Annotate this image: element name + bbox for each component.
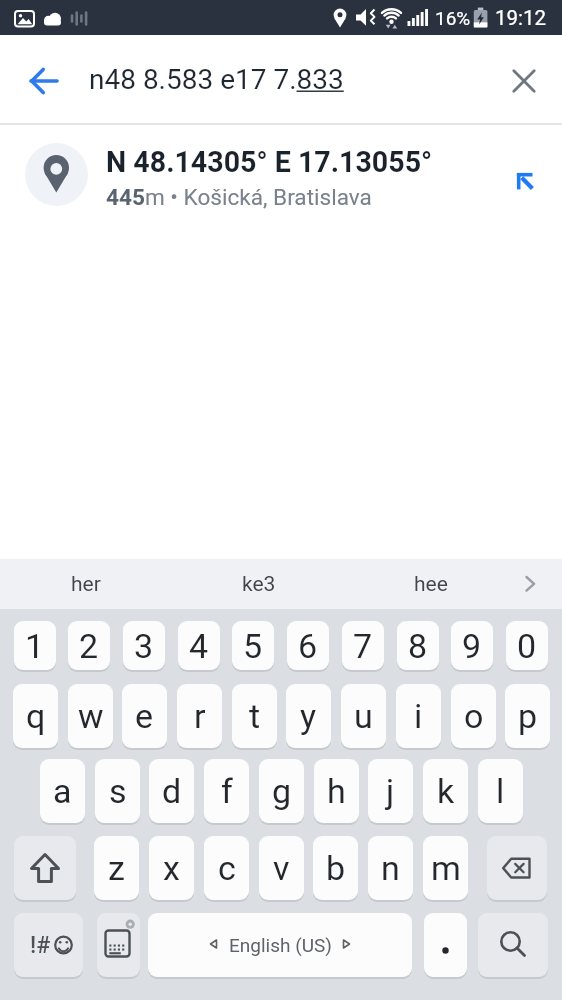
staticText: q [26, 696, 46, 736]
button[interactable] [14, 836, 76, 900]
button[interactable]: h [314, 759, 359, 823]
staticText: r [194, 696, 206, 736]
staticText: 3 [134, 626, 154, 666]
staticText: g [272, 771, 292, 811]
button[interactable]: s [95, 759, 140, 823]
staticText: 4 [189, 626, 209, 666]
button[interactable]: j [368, 759, 413, 823]
button[interactable] [487, 836, 547, 900]
staticText: j [386, 771, 395, 811]
button[interactable] [148, 913, 412, 977]
button[interactable] [510, 559, 555, 609]
button[interactable]: 2 [68, 621, 110, 670]
button[interactable] [14, 913, 83, 977]
staticText: 2 [79, 626, 99, 666]
button[interactable]: x [149, 836, 194, 900]
staticText: !# [30, 932, 51, 959]
staticText: n [381, 848, 400, 888]
staticText: ke3 [242, 572, 276, 597]
button[interactable]: b [313, 836, 358, 900]
staticText: s [109, 771, 127, 811]
staticText: y [300, 696, 317, 736]
staticText: 0 [517, 626, 537, 666]
staticText: z [108, 848, 125, 888]
button[interactable]: hee [391, 559, 471, 609]
button[interactable]: 9 [451, 621, 493, 670]
staticText: w [78, 696, 104, 736]
button[interactable]: z [94, 836, 139, 900]
button[interactable]: 4 [178, 621, 220, 670]
staticText: c [218, 848, 236, 888]
staticText: 1 [25, 626, 45, 666]
button[interactable]: 5 [232, 621, 274, 670]
staticText: h [327, 771, 346, 811]
button[interactable]: i [396, 684, 441, 748]
button[interactable]: f [204, 759, 249, 823]
staticText: p [518, 696, 538, 736]
button[interactable]: e [122, 684, 167, 748]
button[interactable]: d [149, 759, 194, 823]
staticText: i [414, 696, 423, 736]
button[interactable] [498, 55, 550, 107]
button[interactable]: 8 [397, 621, 439, 670]
staticText: 8 [408, 626, 428, 666]
button[interactable]: 3 [123, 621, 165, 670]
button[interactable]: r [177, 684, 222, 748]
button[interactable]: q [13, 684, 58, 748]
staticText: x [163, 848, 180, 888]
staticText: d [162, 771, 182, 811]
staticText: 5 [243, 626, 263, 666]
button[interactable] [478, 913, 548, 977]
button[interactable]: her [46, 559, 126, 609]
button[interactable] [424, 913, 467, 977]
staticText: u [354, 696, 373, 736]
staticText: m [431, 848, 461, 888]
staticText: English (US) [229, 934, 332, 956]
button[interactable] [500, 158, 550, 206]
button[interactable]: 7 [342, 621, 384, 670]
button[interactable]: ke3 [219, 559, 299, 609]
button[interactable]: k [423, 759, 468, 823]
staticText: 7 [353, 626, 373, 666]
staticText: 6 [298, 626, 318, 666]
button[interactable]: a [40, 759, 85, 823]
staticText: 445m • Košická, Bratislava [106, 184, 372, 210]
staticText: e [135, 696, 154, 736]
button[interactable]: c [204, 836, 249, 900]
staticText: k [437, 771, 455, 811]
button[interactable]: u [341, 684, 386, 748]
staticText: a [53, 771, 72, 811]
staticText: t [249, 696, 261, 736]
staticText: l [496, 771, 505, 811]
staticText: v [273, 848, 290, 888]
staticText: 9 [462, 626, 482, 666]
button[interactable]: y [286, 684, 331, 748]
staticText: f [221, 771, 233, 811]
button[interactable]: p [505, 684, 550, 748]
button[interactable] [97, 913, 140, 977]
button[interactable]: g [259, 759, 304, 823]
staticText: n48 8.583 e17 7.833 [89, 63, 344, 96]
button[interactable]: 6 [287, 621, 329, 670]
button[interactable]: t [232, 684, 277, 748]
button[interactable]: v [259, 836, 304, 900]
staticText: N 48.14305° E 17.13055° [106, 145, 433, 179]
staticText: 16% [435, 7, 471, 29]
button[interactable]: 0 [506, 621, 548, 670]
staticText: b [326, 848, 346, 888]
button[interactable] [0, 128, 562, 220]
button[interactable]: w [68, 684, 113, 748]
staticText: her [71, 572, 101, 597]
staticText: 19:12 [495, 6, 547, 30]
button[interactable]: m [423, 836, 468, 900]
staticText: o [464, 696, 484, 736]
button[interactable]: l [478, 759, 523, 823]
button[interactable]: o [451, 684, 496, 748]
button[interactable]: 1 [14, 621, 56, 670]
button[interactable]: n [368, 836, 413, 900]
button[interactable] [18, 55, 70, 107]
staticText: hee [414, 572, 448, 597]
